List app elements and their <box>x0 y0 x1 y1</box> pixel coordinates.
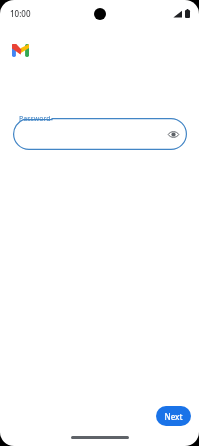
button[interactable]: Next <box>156 406 191 426</box>
button[interactable]: Show password <box>164 125 182 143</box>
staticText: Password <box>19 114 51 124</box>
staticText: 10:00 <box>10 8 31 19</box>
staticText: Next <box>164 411 183 422</box>
button[interactable]: Show password <box>13 118 187 150</box>
